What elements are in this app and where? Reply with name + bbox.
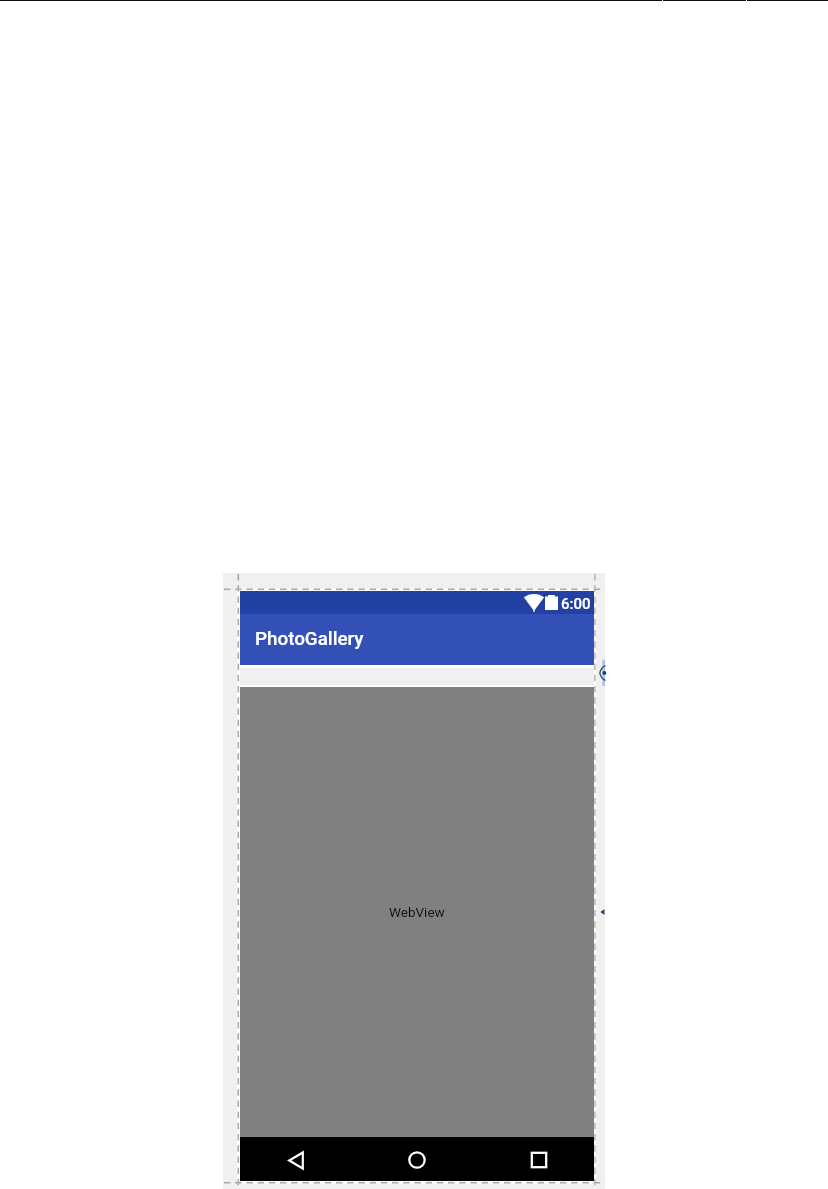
button[interactable]: Home bbox=[395, 1138, 439, 1182]
staticText: 6:00 bbox=[561, 595, 591, 613]
other: Battery bbox=[545, 595, 558, 610]
button[interactable]: WebView bbox=[240, 687, 594, 1137]
other: Wi-Fi bbox=[524, 594, 544, 612]
button[interactable]: PhotoGallery bbox=[240, 614, 594, 665]
staticText: WebView bbox=[389, 904, 445, 920]
button[interactable]: Recent apps bbox=[517, 1138, 561, 1182]
button[interactable]: Collapse panel bbox=[598, 904, 605, 920]
button[interactable]: Toggle visibility bbox=[599, 656, 605, 688]
button[interactable]: Back bbox=[274, 1138, 318, 1182]
staticText: PhotoGallery bbox=[255, 628, 364, 650]
